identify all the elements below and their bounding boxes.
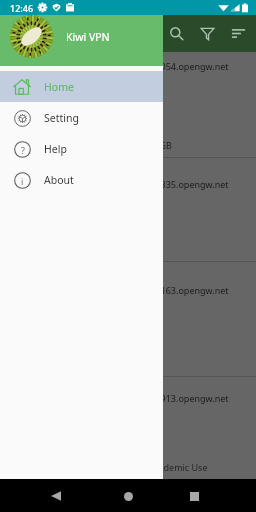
staticText: About <box>44 173 74 187</box>
staticText: Home <box>44 80 74 94</box>
button[interactable]: Sort <box>223 18 254 49</box>
button[interactable]: vpn216745335.opengw.net <box>0 158 256 262</box>
button[interactable]: Back <box>40 480 72 512</box>
button[interactable]: ? <box>0 133 163 164</box>
button[interactable]: vpn984731054.opengw.net <box>0 58 256 158</box>
button[interactable]: Setting <box>0 102 163 133</box>
staticText: vpn216745335.opengw.net <box>114 178 229 190</box>
staticText: vpn449331163.opengw.net <box>114 284 229 296</box>
staticText: Total traffic: 24.41 GB <box>82 139 172 151</box>
staticText: vpn984731054.opengw.net <box>114 60 229 72</box>
staticText: Kiwi VPN <box>66 30 110 44</box>
staticText: i <box>21 175 24 187</box>
button[interactable]: i <box>0 164 163 195</box>
staticText: Help <box>44 142 67 156</box>
button[interactable]: Home <box>0 71 163 102</box>
button[interactable]: Recents <box>178 480 210 512</box>
button[interactable]: Search <box>161 18 192 49</box>
staticText: ? <box>21 144 25 156</box>
button[interactable]: vpn449331163.opengw.net <box>0 262 256 377</box>
button[interactable]: Filter <box>192 18 223 49</box>
staticText: Japan, Academic Use <box>120 461 208 473</box>
staticText: Setting <box>44 111 79 125</box>
staticText: 12:46 <box>10 2 34 14</box>
staticText: vpn557028913.opengw.net <box>114 392 229 404</box>
button[interactable]: vpn557028913.opengw.net <box>0 377 256 480</box>
button[interactable]: Home <box>112 480 144 512</box>
